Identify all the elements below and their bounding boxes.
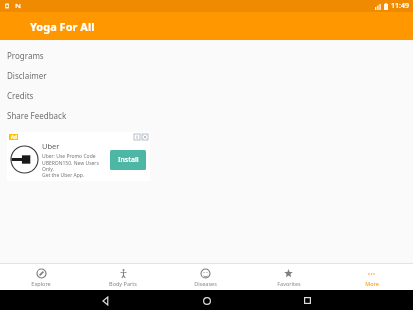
staticText: Explore — [31, 280, 51, 287]
button[interactable]: Share Feedback — [0, 105, 413, 125]
staticText: More — [365, 280, 379, 287]
button[interactable]: Back — [100, 295, 111, 306]
button[interactable]: Explore — [0, 266, 82, 289]
staticText: Disclaimer — [7, 70, 47, 81]
staticText: Programs — [7, 50, 44, 61]
other: More — [367, 269, 376, 278]
button[interactable]: Ad information — [134, 134, 140, 140]
staticText: Yoga For All — [30, 19, 95, 34]
staticText: Share Feedback — [7, 110, 67, 121]
button[interactable]: Ad — [7, 132, 150, 181]
button[interactable]: More — [330, 266, 413, 289]
staticText: Credits — [7, 90, 34, 101]
button[interactable]: Install — [110, 150, 146, 170]
button[interactable]: Close ad — [142, 134, 148, 140]
staticText: Uber — [42, 141, 60, 151]
staticText: Uber: Use Promo Code UBERON150. New User… — [42, 153, 107, 178]
staticText: 11:49 — [391, 1, 409, 11]
staticText: Ad — [11, 134, 17, 140]
button[interactable]: Recent apps — [302, 295, 313, 306]
button[interactable]: Diseases — [164, 266, 247, 289]
button[interactable]: Favorites — [247, 266, 330, 289]
button[interactable]: Disclaimer — [0, 65, 413, 85]
button[interactable]: Home — [201, 295, 212, 306]
staticText: Body Parts — [109, 280, 137, 287]
button[interactable]: Credits — [0, 85, 413, 105]
staticText: Diseases — [194, 280, 217, 287]
staticText: Install — [118, 155, 139, 165]
button[interactable]: Programs — [0, 45, 413, 65]
button[interactable]: Body Parts — [82, 266, 164, 289]
staticText: Favorites — [277, 280, 301, 287]
